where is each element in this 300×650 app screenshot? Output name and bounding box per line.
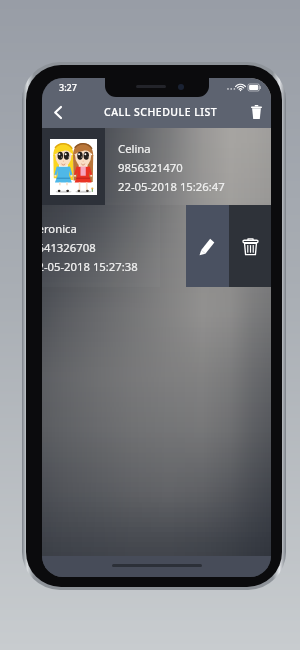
staticText: Celina 9856321470 22-05-2018 15:26:47 <box>118 141 225 194</box>
staticText: Veronica 9641326708 22-05-2018 15:27:38 <box>42 221 138 274</box>
staticText: 3:27 <box>59 81 77 93</box>
button[interactable]: Delete all <box>241 96 271 128</box>
button[interactable]: Edit <box>186 205 229 287</box>
button[interactable]: Back <box>42 96 74 128</box>
button[interactable]: Delete <box>229 205 271 287</box>
staticText: CALL SCHEDULE LIST <box>104 105 218 119</box>
button[interactable]: Celina 9856321470 22-05-2018 15:26:47 <box>42 128 271 205</box>
